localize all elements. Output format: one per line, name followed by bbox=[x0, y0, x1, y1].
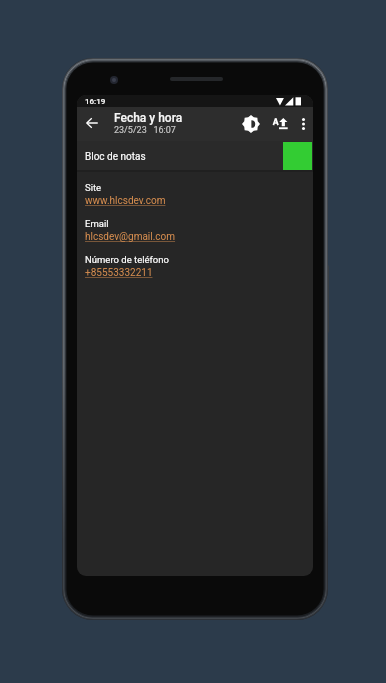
button[interactable]: Email bbox=[77, 218, 313, 243]
staticText: 23/5/23 16:07 bbox=[114, 125, 176, 136]
button[interactable]: Bloc de notas bbox=[77, 141, 313, 172]
staticText: Número de teléfono bbox=[85, 254, 169, 265]
staticText: hlcsdev@gmail.com bbox=[85, 231, 176, 243]
staticText: Bloc de notas bbox=[85, 151, 146, 163]
button[interactable]: Back bbox=[80, 113, 103, 136]
staticText: Email bbox=[85, 218, 109, 229]
button[interactable]: Font size bbox=[269, 113, 291, 135]
button[interactable]: Site bbox=[77, 182, 313, 207]
staticText: Fecha y hora bbox=[114, 111, 183, 125]
button[interactable]: Número de teléfono bbox=[77, 254, 313, 279]
staticText: www.hlcsdev.com bbox=[85, 195, 166, 207]
staticText: 16:19 bbox=[85, 97, 106, 106]
staticText: Site bbox=[85, 182, 102, 193]
button[interactable]: More options bbox=[294, 115, 312, 133]
button[interactable]: Brightness bbox=[239, 112, 263, 136]
staticText: +85553332211 bbox=[85, 267, 153, 279]
